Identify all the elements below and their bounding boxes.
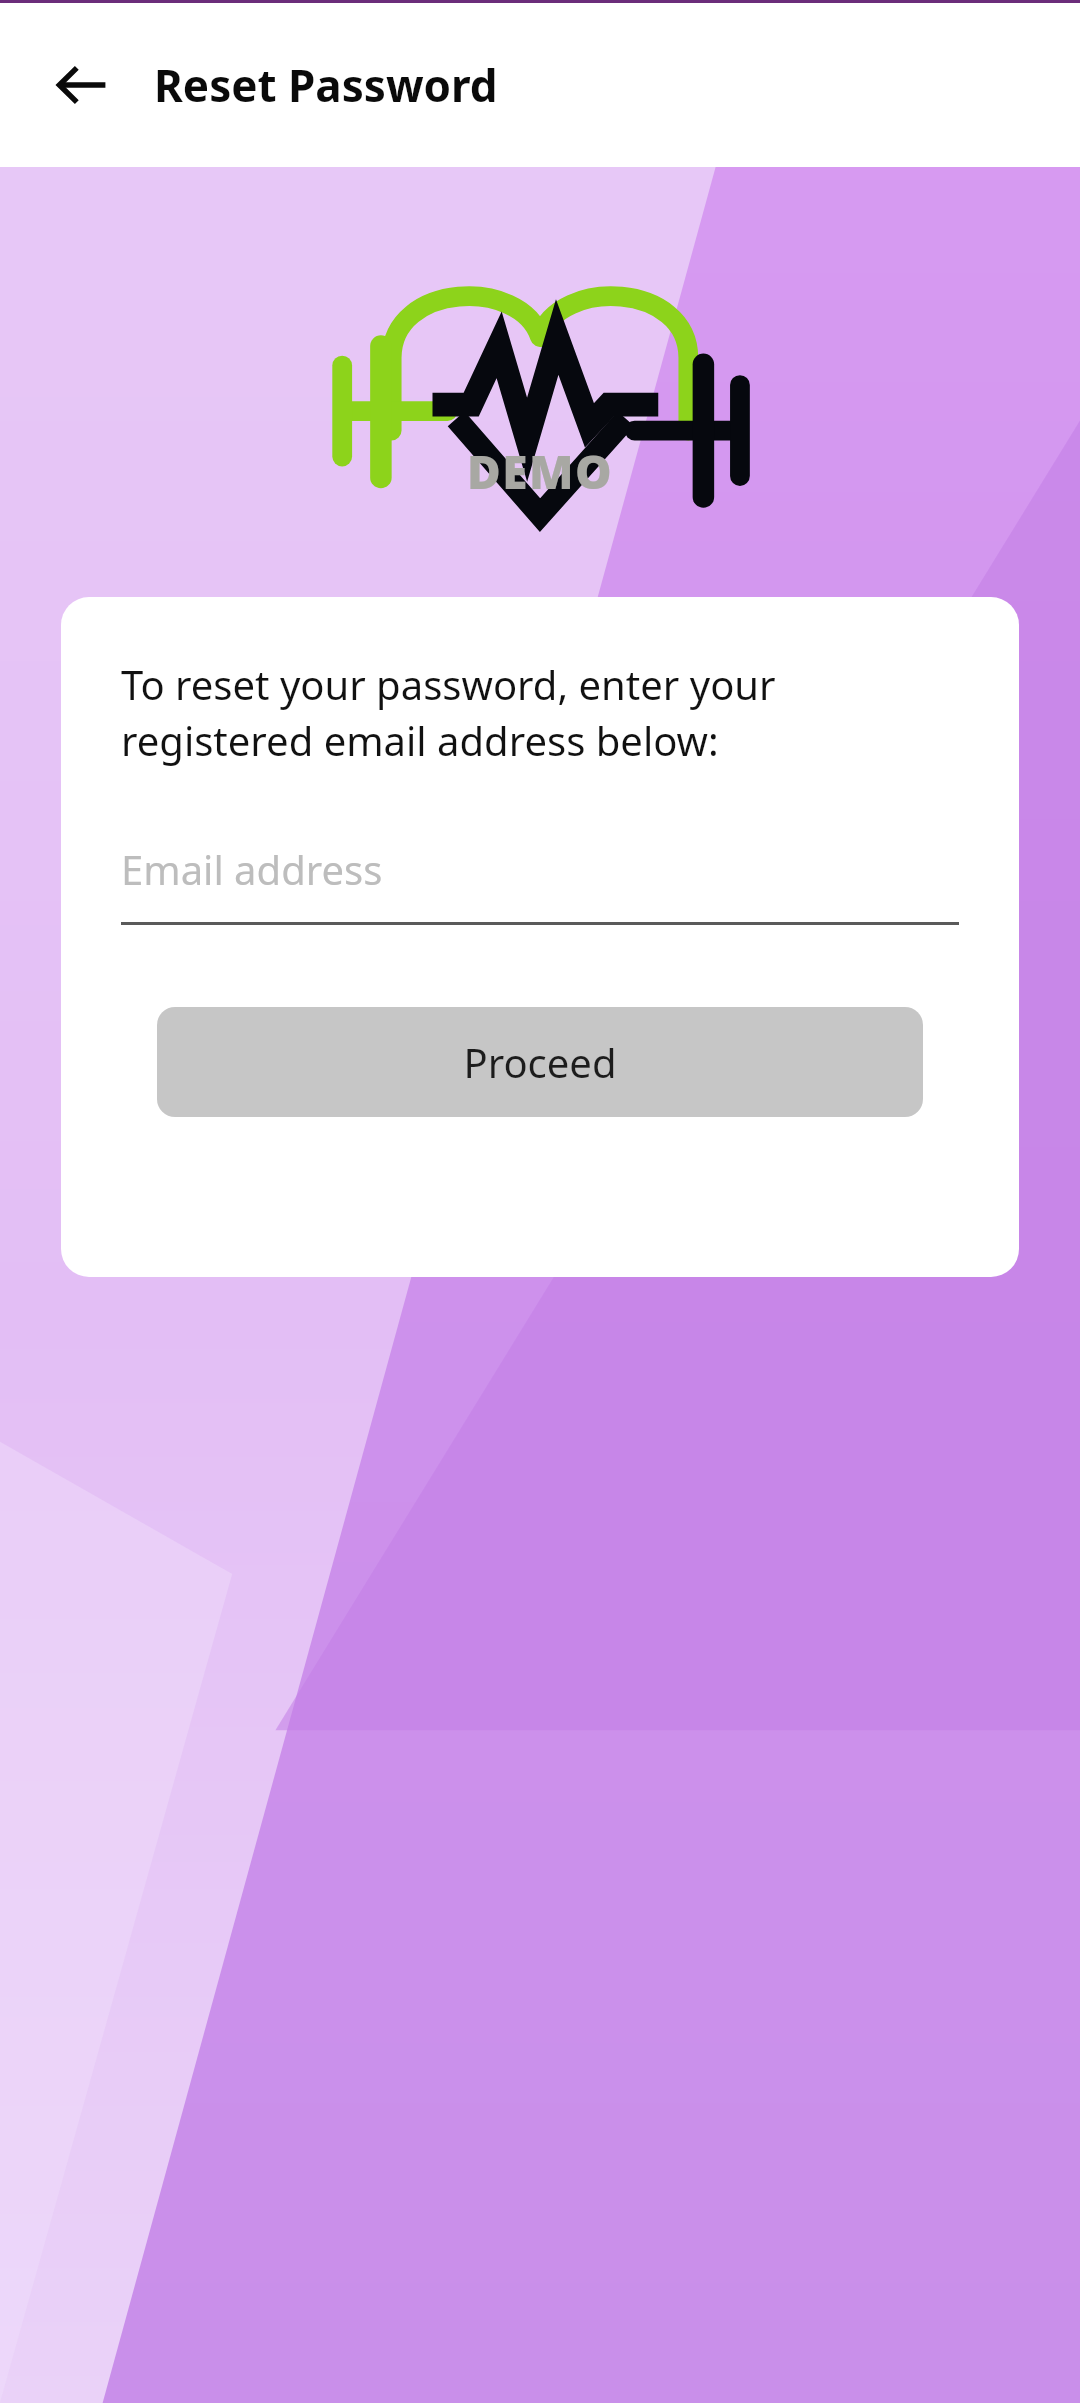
staticText: To reset your password, enter your regis… — [121, 657, 776, 768]
button[interactable]: Proceed — [157, 1007, 923, 1117]
staticText: Email address — [121, 842, 383, 896]
staticText: Reset Password — [154, 55, 498, 115]
button[interactable]: Email address — [121, 842, 959, 925]
staticText: Proceed — [463, 1035, 617, 1089]
button[interactable]: Back — [34, 37, 130, 133]
staticText: DEMO — [467, 440, 614, 503]
